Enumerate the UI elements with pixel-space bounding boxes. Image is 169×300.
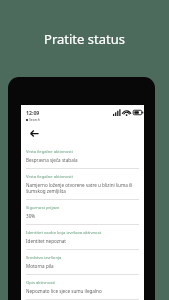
staticText: Vrsta ilegalne aktivnosti (26, 174, 73, 180)
button[interactable]: Sigurnost prijave (26, 200, 139, 225)
staticText: Sigurnost prijave (26, 205, 60, 211)
staticText: Motorna pila (26, 263, 54, 269)
staticText: Opis aktivnosti (26, 280, 56, 286)
staticText: Namjerno loženje otvorene vatre u blizin… (26, 182, 139, 194)
button[interactable]: Identitet osobe koja izvršava aktivnost (26, 225, 139, 250)
staticText: Identitet osobe koja izvršava aktivnost (26, 230, 102, 236)
staticText: Identitet nepoznat (26, 238, 66, 244)
button[interactable]: Sredstvo izvršenja (26, 250, 139, 275)
button[interactable]: Opis aktivnosti (26, 275, 139, 300)
staticText: 12:09 (26, 109, 40, 116)
staticText: Bespravna sječa stabala (26, 157, 78, 163)
staticText: Nepoznato lice sjece sumu ilegalno (26, 288, 102, 294)
button[interactable]: Vrsta ilegalne aktivnosti (26, 169, 139, 200)
button[interactable]: Back (26, 125, 42, 141)
staticText: Vrsta ilegalne aktivnosti (26, 149, 73, 155)
staticText: Sredstvo izvršenja (26, 255, 62, 261)
staticText: Search (29, 117, 40, 122)
button[interactable]: Vrsta ilegalne aktivnosti (26, 144, 139, 169)
staticText: 30% (26, 213, 36, 219)
staticText: Pratite status (0, 30, 169, 48)
